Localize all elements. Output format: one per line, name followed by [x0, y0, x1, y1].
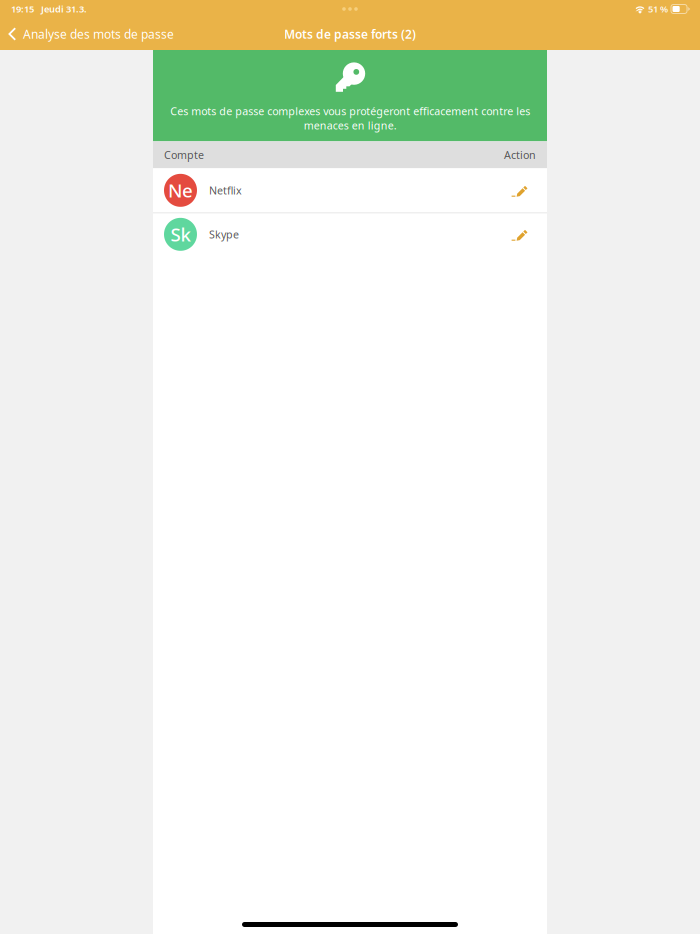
- button[interactable]: Ne: [153, 168, 547, 212]
- staticText: 19:15: [11, 3, 34, 15]
- staticText: Ne: [168, 178, 193, 203]
- staticText: Compte: [164, 148, 204, 162]
- staticText: Ces mots de passe complexes vous protége…: [170, 104, 530, 132]
- staticText: Action: [504, 148, 536, 162]
- staticText: Analyse des mots de passe: [23, 26, 174, 42]
- button[interactable]: Analyse des mots de passe: [0, 20, 182, 48]
- staticText: Jeudi 31.3.: [41, 3, 87, 15]
- staticText: Skype: [209, 227, 239, 241]
- staticText: Sk: [170, 222, 190, 247]
- staticText: 51 %: [648, 3, 668, 15]
- button[interactable]: Sk: [153, 212, 547, 256]
- staticText: Mots de passe forts (2): [284, 26, 416, 42]
- staticText: Netflix: [209, 183, 242, 197]
